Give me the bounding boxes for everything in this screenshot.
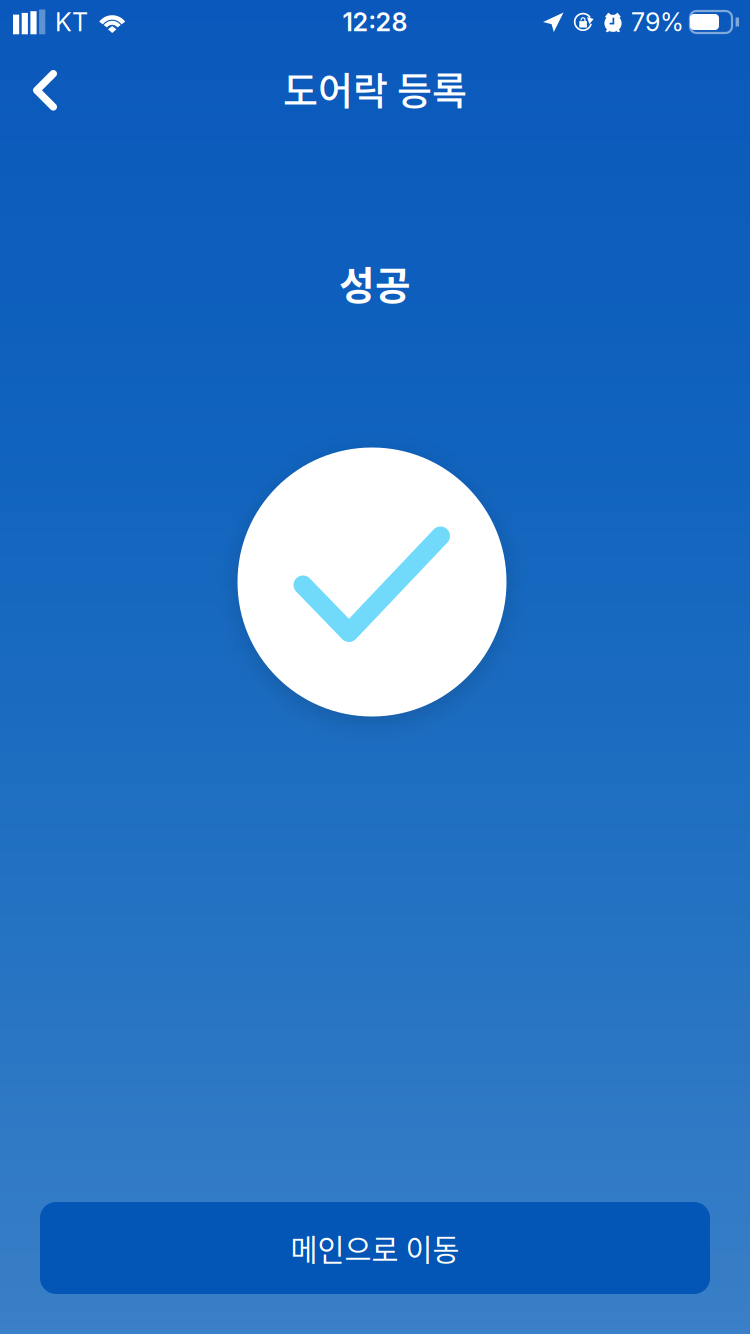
button[interactable]: 메인으로 이동	[40, 1202, 710, 1294]
button[interactable]: Back	[0, 44, 82, 132]
staticText: KT	[55, 7, 88, 37]
staticText: 메인으로 이동	[290, 1227, 459, 1269]
staticText: 79%	[631, 7, 684, 37]
staticText: 도어락 등록	[283, 60, 467, 115]
staticText: 12:28	[342, 7, 407, 37]
staticText: 성공	[339, 255, 411, 311]
